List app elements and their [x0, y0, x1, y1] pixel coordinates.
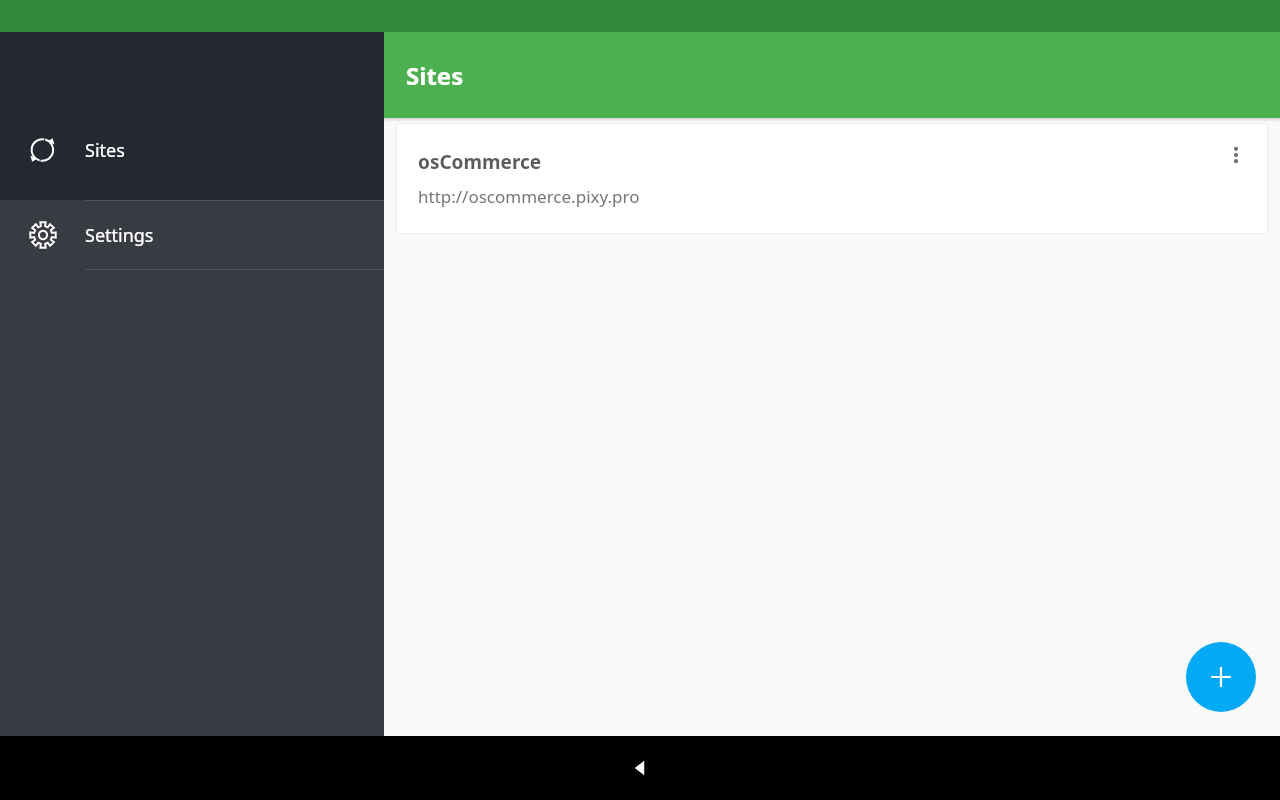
staticText: Sites — [406, 59, 464, 92]
staticText: Sites — [85, 138, 125, 163]
button[interactable]: Sites — [0, 122, 384, 178]
button[interactable]: Back — [612, 740, 668, 796]
button[interactable]: More options — [1212, 131, 1260, 179]
button[interactable]: Add site — [1186, 642, 1256, 712]
staticText: osCommerce — [418, 149, 542, 175]
button[interactable]: osCommerce — [396, 123, 1268, 234]
staticText: Settings — [85, 223, 154, 248]
button[interactable]: Settings — [0, 201, 384, 269]
staticText: http://oscommerce.pixy.pro — [418, 185, 640, 208]
